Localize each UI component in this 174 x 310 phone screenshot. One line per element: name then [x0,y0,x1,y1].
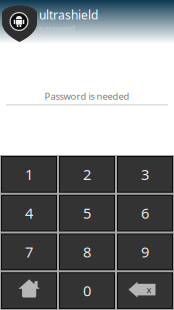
button[interactable] [58,232,116,271]
button[interactable] [116,194,174,233]
staticText: 9 [141,242,149,262]
staticText: 4 [25,203,33,223]
staticText: password [39,24,75,34]
button[interactable] [58,271,116,310]
button[interactable]: Home [0,271,58,310]
button[interactable] [116,155,174,194]
button[interactable]: Delete [116,271,174,310]
button[interactable] [0,232,58,271]
staticText: 1 [25,165,33,184]
staticText: 2 [83,165,91,184]
button[interactable] [58,194,116,233]
staticText: 3 [141,165,149,184]
button[interactable] [116,232,174,271]
staticText: 5 [83,203,91,223]
staticText: ultrashield [39,7,98,23]
button[interactable] [58,155,116,194]
staticText: 7 [25,242,33,262]
staticText: 8 [83,242,91,262]
staticText: Password is needed [44,90,129,102]
staticText: 0 [83,281,91,300]
staticText: x [146,283,151,296]
staticText: 6 [141,203,149,223]
button[interactable] [0,194,58,233]
button[interactable] [0,155,58,194]
